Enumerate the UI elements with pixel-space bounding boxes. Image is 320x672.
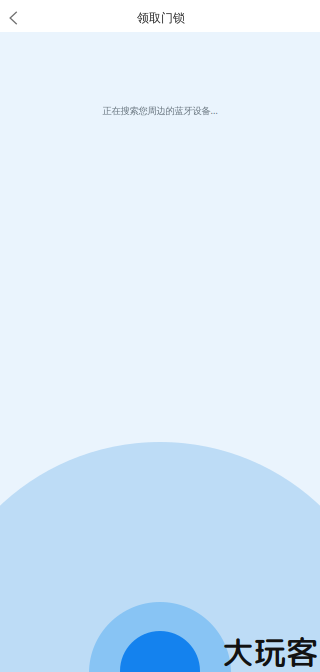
staticText: 大玩客	[222, 630, 318, 672]
button[interactable]: Back	[0, 0, 27, 32]
staticText: 领取门锁	[137, 11, 185, 25]
staticText: 正在搜索您周边的蓝牙设备…	[102, 104, 217, 117]
